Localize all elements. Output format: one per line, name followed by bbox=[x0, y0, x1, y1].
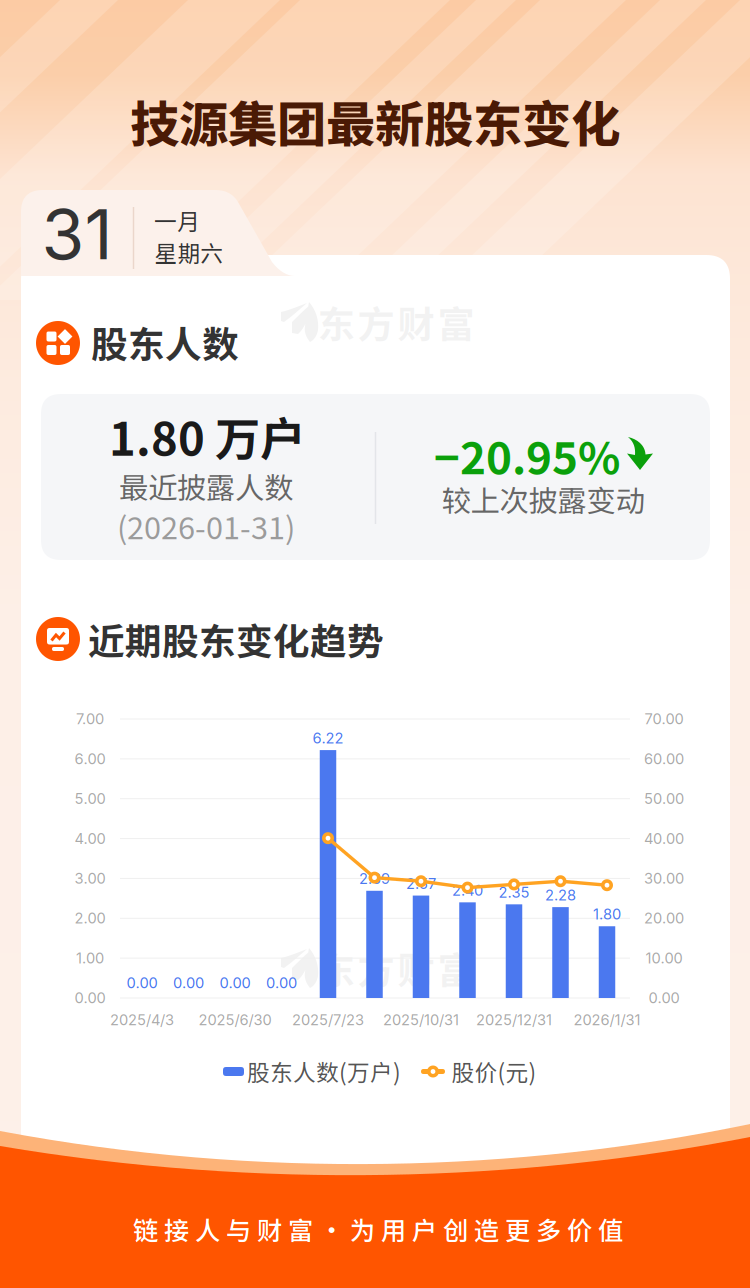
staticText: 1.80 bbox=[593, 905, 621, 923]
staticText: 最近披露人数 bbox=[119, 465, 293, 507]
staticText: 2025/7/23 bbox=[292, 1011, 364, 1029]
staticText: 星期六 bbox=[154, 236, 223, 268]
staticText: 6.22 bbox=[312, 729, 343, 747]
staticText: 股价(元) bbox=[451, 1055, 536, 1087]
staticText: 1.00 bbox=[76, 949, 104, 967]
staticText: 2.00 bbox=[74, 909, 105, 927]
staticText: 较上次披露变动 bbox=[441, 478, 644, 520]
staticText: 东方财富 bbox=[317, 295, 474, 349]
staticText: 4.00 bbox=[74, 830, 105, 847]
staticText: 10.00 bbox=[645, 949, 682, 967]
staticText: 7.00 bbox=[76, 710, 104, 728]
staticText: 2.35 bbox=[498, 883, 529, 901]
staticText: 2025/10/31 bbox=[383, 1011, 459, 1029]
staticText: 20.00 bbox=[644, 909, 684, 927]
staticText: 0.00 bbox=[219, 974, 250, 992]
staticText: 3.00 bbox=[74, 870, 105, 887]
staticText: 31 bbox=[41, 192, 112, 276]
staticText: −20.95% bbox=[434, 423, 620, 487]
staticText: 40.00 bbox=[644, 830, 684, 847]
staticText: 1.80 万户 bbox=[109, 403, 305, 469]
staticText: 股东人数 bbox=[91, 315, 239, 369]
staticText: 东方财富 bbox=[317, 941, 474, 995]
staticText: 0.00 bbox=[74, 989, 105, 1007]
staticText: 2.57 bbox=[406, 875, 436, 892]
staticText: 2.28 bbox=[545, 886, 576, 904]
staticText: 一月 bbox=[154, 204, 200, 236]
staticText: 6.00 bbox=[74, 750, 105, 768]
staticText: 2.69 bbox=[359, 870, 390, 888]
staticText: 0.00 bbox=[648, 989, 679, 1007]
staticText: 0.00 bbox=[126, 974, 157, 992]
staticText: 70.00 bbox=[644, 710, 683, 728]
staticText: 技源集团最新股东变化 bbox=[130, 85, 620, 157]
staticText: 0.00 bbox=[266, 974, 297, 992]
staticText: 60.00 bbox=[644, 750, 684, 768]
staticText: 30.00 bbox=[644, 870, 684, 887]
staticText: (2026-01-31) bbox=[117, 504, 295, 548]
staticText: 近期股东变化趋势 bbox=[88, 612, 384, 666]
staticText: 链接人与财富·为用户创造更多价值 bbox=[133, 1211, 623, 1247]
staticText: 50.00 bbox=[644, 790, 684, 807]
staticText: 2026/1/31 bbox=[573, 1011, 640, 1029]
staticText: 2025/4/3 bbox=[110, 1011, 174, 1029]
staticText: 5.00 bbox=[74, 790, 105, 807]
staticText: 0.00 bbox=[173, 974, 204, 992]
staticText: 2.40 bbox=[452, 881, 483, 899]
staticText: 2025/6/30 bbox=[198, 1011, 271, 1029]
staticText: 股东人数(万户) bbox=[247, 1055, 401, 1087]
staticText: 2025/12/31 bbox=[476, 1011, 552, 1029]
